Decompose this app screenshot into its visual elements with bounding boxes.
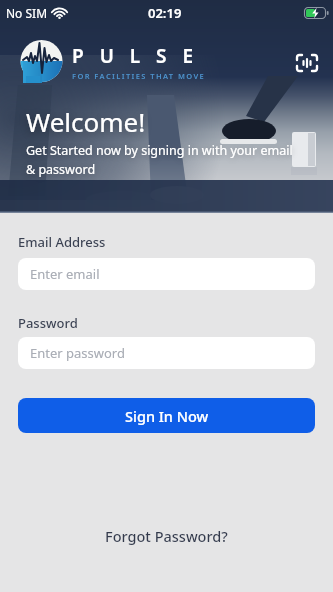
staticText: P U L S E (72, 43, 199, 69)
staticText: Email Address (18, 233, 106, 251)
staticText: No SIM (6, 5, 48, 21)
staticText: Sign In Now (125, 406, 209, 426)
staticText: 02:19 (148, 4, 182, 22)
staticText: Enter password (30, 344, 125, 362)
button[interactable]: Enter password (18, 337, 315, 369)
button[interactable]: Sign In Now (18, 398, 315, 433)
staticText: Get Started now by signing in with your … (26, 142, 293, 178)
staticText: Enter email (30, 265, 100, 283)
staticText: Welcome! (26, 104, 146, 139)
staticText: FOR FACILITIES THAT MOVE (72, 71, 206, 81)
button[interactable] (295, 52, 319, 72)
button[interactable]: Forgot Password? (105, 526, 228, 546)
staticText: Password (18, 314, 78, 332)
button[interactable]: Enter email (18, 258, 315, 290)
